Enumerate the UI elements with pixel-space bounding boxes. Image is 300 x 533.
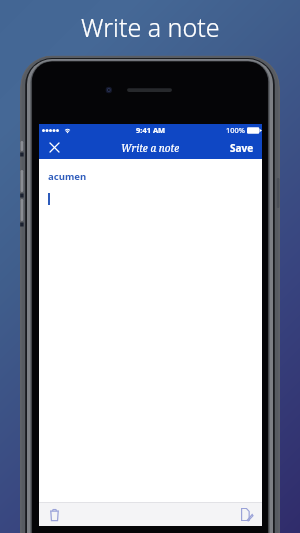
button[interactable]: Close (43, 136, 66, 159)
staticText: 100% (226, 125, 245, 135)
button[interactable]: Save (222, 137, 262, 159)
staticText: Save (230, 141, 254, 155)
staticText: Write a note (121, 141, 180, 155)
staticText: 9:41 AM (136, 125, 166, 135)
button[interactable]: Delete note (46, 506, 63, 523)
staticText: acumen (48, 170, 87, 183)
staticText: Write a note (81, 10, 220, 44)
button[interactable]: New note (238, 506, 255, 523)
